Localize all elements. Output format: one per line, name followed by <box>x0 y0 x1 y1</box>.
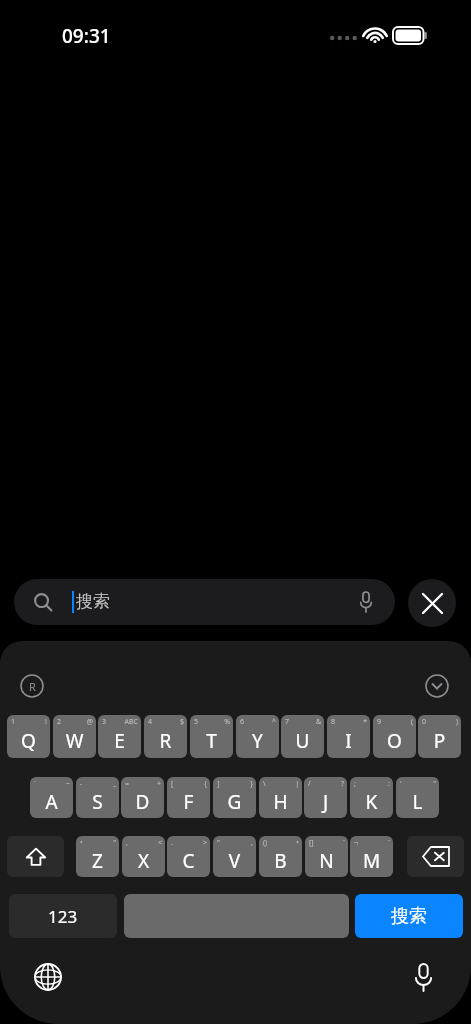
staticText: \ <box>263 779 266 789</box>
staticText: ` <box>308 838 345 848</box>
staticText: • <box>262 838 299 848</box>
staticText: O <box>373 728 416 754</box>
button[interactable]: ¬ <box>350 836 393 877</box>
staticText: S <box>76 789 119 815</box>
button[interactable]: ] <box>213 777 256 818</box>
staticText: 0 <box>422 717 427 727</box>
staticText: ] <box>217 779 220 789</box>
staticText: H <box>259 789 302 815</box>
staticText: + <box>124 779 161 789</box>
staticText: G <box>213 789 256 815</box>
staticText: N <box>305 848 348 874</box>
button[interactable]: ; <box>350 777 393 818</box>
button[interactable]: = <box>121 777 164 818</box>
staticText: 123 <box>48 905 78 928</box>
staticText: ! <box>10 717 47 727</box>
staticText: [] <box>309 838 314 848</box>
button[interactable]: Close <box>408 579 456 627</box>
staticText: ' <box>400 779 402 789</box>
staticText: ABC <box>101 717 138 727</box>
button[interactable]: Space <box>124 894 349 938</box>
staticText: , <box>126 838 128 848</box>
button[interactable]: [ <box>167 777 210 818</box>
staticText: X <box>122 848 165 874</box>
button[interactable]: . <box>167 836 210 877</box>
staticText: U <box>281 728 324 754</box>
staticText: ` <box>353 838 390 848</box>
staticText: 1 <box>11 717 16 727</box>
staticText: () <box>263 838 268 848</box>
staticText: ¬ <box>354 838 359 848</box>
staticText: 搜索 <box>391 905 427 928</box>
button[interactable]: 3 <box>98 715 141 758</box>
button[interactable]: • <box>76 836 119 877</box>
button[interactable]: [] <box>305 836 348 877</box>
button[interactable]: Voice input <box>403 957 443 997</box>
staticText: @ <box>56 717 93 727</box>
staticText: _ <box>79 779 116 789</box>
button[interactable]: Shift <box>7 836 64 877</box>
button[interactable]: ` <box>30 777 73 818</box>
staticText: ^ <box>239 717 276 727</box>
staticText: Y <box>236 728 279 754</box>
staticText: E <box>98 728 141 754</box>
button[interactable]: 123 <box>9 894 117 938</box>
staticText: • <box>80 838 83 848</box>
button[interactable]: 5 <box>190 715 233 758</box>
button[interactable]: - <box>76 777 119 818</box>
button[interactable]: " <box>213 836 256 877</box>
staticText: Q <box>7 728 50 754</box>
staticText: & <box>284 717 321 727</box>
staticText: M <box>350 848 393 874</box>
staticText: ~ <box>33 779 70 789</box>
staticText: / <box>308 779 311 789</box>
staticText: } <box>216 779 253 789</box>
staticText: ; <box>354 779 356 789</box>
button[interactable]: 7 <box>281 715 324 758</box>
button[interactable]: 0 <box>418 715 461 758</box>
button[interactable]: 4 <box>144 715 187 758</box>
staticText: " <box>79 838 116 848</box>
button[interactable]: 6 <box>236 715 279 758</box>
staticText: R <box>29 679 36 694</box>
button[interactable]: () <box>259 836 302 877</box>
button[interactable]: ' <box>396 777 439 818</box>
button[interactable]: 搜索 <box>355 894 463 938</box>
button[interactable]: 搜索 <box>14 579 395 625</box>
button[interactable]: 8 <box>327 715 370 758</box>
staticText: ( <box>376 717 413 727</box>
staticText: T <box>190 728 233 754</box>
staticText: Z <box>76 848 119 874</box>
staticText: L <box>396 789 439 815</box>
staticText: 6 <box>240 717 245 727</box>
staticText: ? <box>307 779 344 789</box>
staticText: I <box>327 728 370 754</box>
staticText: J <box>304 789 347 815</box>
staticText: . <box>171 838 173 848</box>
staticText: ) <box>421 717 458 727</box>
staticText: $ <box>147 717 184 727</box>
button[interactable]: 9 <box>373 715 416 758</box>
button[interactable]: Hide keyboard <box>424 673 450 699</box>
staticText: K <box>350 789 393 815</box>
button[interactable]: 1 <box>7 715 50 758</box>
staticText: ` <box>34 779 36 789</box>
button[interactable]: 2 <box>53 715 96 758</box>
staticText: " <box>217 838 220 848</box>
button[interactable]: , <box>122 836 165 877</box>
button[interactable]: / <box>304 777 347 818</box>
staticText: [ <box>171 779 174 789</box>
staticText: " <box>399 779 436 789</box>
other: Voice search <box>359 592 373 612</box>
button[interactable]: Change keyboard language <box>28 957 68 997</box>
button[interactable]: Backspace <box>407 836 464 877</box>
staticText: , <box>216 838 253 848</box>
button[interactable]: \ <box>259 777 302 818</box>
staticText: 8 <box>331 717 336 727</box>
staticText: % <box>193 717 230 727</box>
button[interactable]: Keyboard options <box>19 673 45 699</box>
staticText: A <box>30 789 73 815</box>
staticText: W <box>53 728 96 754</box>
staticText: < <box>125 838 162 848</box>
staticText: * <box>330 717 367 727</box>
